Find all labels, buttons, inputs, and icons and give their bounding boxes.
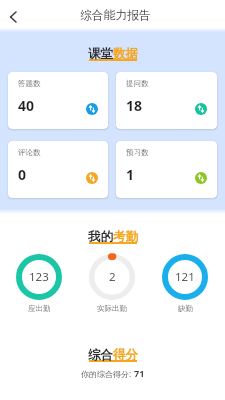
staticText: 预习数 (126, 148, 149, 157)
staticText: 答题数 (18, 79, 41, 88)
staticText: 121 (175, 269, 195, 285)
staticText: 18 (126, 96, 143, 115)
staticText: 缺勤 (178, 304, 193, 313)
staticText: 实际出勤 (97, 304, 127, 313)
staticText: 2 (109, 269, 116, 285)
button[interactable]: 提问数 (116, 72, 217, 129)
button[interactable]: 答题数 (8, 72, 108, 129)
staticText: 40 (18, 96, 35, 115)
staticText: 数据 (113, 46, 138, 62)
staticText: 1 (126, 165, 135, 184)
staticText: 评论数 (18, 148, 41, 157)
button[interactable]: 评论数 (8, 141, 108, 198)
button[interactable]: 预习数 (116, 141, 217, 198)
staticText: 我的 (88, 229, 113, 245)
staticText: 0 (18, 165, 27, 184)
staticText: 123 (29, 269, 49, 285)
staticText: 应出勤 (28, 304, 51, 313)
staticText: 你的综合得分: (81, 368, 132, 379)
staticText: 课堂 (88, 46, 113, 62)
staticText: 综合能力报告 (80, 8, 151, 23)
staticText: 得分 (113, 347, 138, 363)
staticText: 提问数 (126, 79, 149, 88)
staticText: 71 (134, 367, 145, 379)
staticText: 考勤 (113, 229, 138, 245)
staticText: 综合 (88, 347, 113, 363)
button[interactable]: Back (0, 1, 28, 29)
